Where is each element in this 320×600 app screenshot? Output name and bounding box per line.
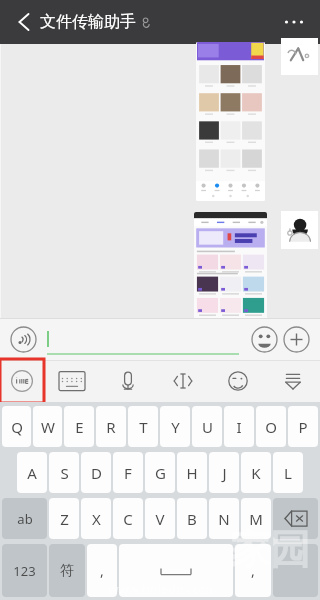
staticText: R — [106, 417, 116, 437]
button[interactable]: D — [81, 452, 111, 493]
staticText: 123 — [13, 562, 36, 580]
staticText: Q — [11, 417, 23, 437]
button[interactable]: Image — [194, 212, 267, 354]
button[interactable]: More functions — [283, 326, 310, 353]
button[interactable]: 符 — [49, 544, 85, 597]
staticText: B — [187, 509, 197, 529]
staticText: K — [251, 463, 261, 483]
staticText: H — [186, 463, 198, 483]
button[interactable]: T — [128, 406, 158, 447]
staticText: M — [249, 509, 263, 529]
button[interactable]: Back — [6, 5, 40, 39]
staticText: J — [222, 463, 227, 483]
button[interactable]: , — [235, 544, 271, 597]
button[interactable]: L — [273, 452, 303, 493]
staticText: P — [298, 417, 308, 437]
button[interactable]: Keyboard — [44, 360, 100, 402]
staticText: F — [124, 463, 132, 483]
button[interactable]: , — [87, 544, 117, 597]
button[interactable] — [47, 318, 243, 360]
button[interactable]: Emoji — [251, 326, 278, 353]
button[interactable]: M — [241, 498, 271, 539]
staticText: O — [265, 417, 277, 437]
button[interactable]: P — [288, 406, 318, 447]
staticText: C — [123, 509, 133, 529]
staticText: , — [100, 561, 104, 580]
staticText: Y — [171, 417, 180, 437]
staticText: U — [202, 417, 213, 437]
staticText: ab — [17, 510, 33, 528]
button[interactable]: U — [192, 406, 222, 447]
staticText: 符 — [60, 562, 74, 580]
staticText: D — [91, 463, 102, 483]
staticText: 文件传输助手 — [40, 12, 136, 32]
button[interactable]: W — [33, 406, 62, 447]
staticText: A — [27, 463, 37, 483]
button[interactable]: H — [177, 452, 207, 493]
staticText: N — [218, 509, 230, 529]
staticText: S — [60, 463, 69, 483]
staticText: I — [236, 417, 242, 437]
button[interactable]: Enter — [273, 544, 318, 597]
staticText: , — [251, 561, 255, 580]
button[interactable]: Voice input — [100, 360, 155, 402]
button[interactable]: Backspace — [273, 498, 318, 539]
button[interactable]: Hide keyboard — [265, 360, 320, 402]
button[interactable]: C — [113, 498, 143, 539]
button[interactable]: Voice message — [10, 326, 37, 353]
button[interactable]: B — [177, 498, 207, 539]
button[interactable]: More options — [276, 4, 312, 40]
button[interactable]: N — [209, 498, 239, 539]
button[interactable]: Sticker — [281, 211, 318, 249]
button[interactable]: Image — [196, 42, 265, 201]
button[interactable]: R — [96, 406, 126, 447]
button[interactable]: Move cursor — [155, 360, 210, 402]
button[interactable]: I — [224, 406, 254, 447]
staticText: X — [92, 509, 101, 529]
button[interactable]: O — [256, 406, 286, 447]
button[interactable]: K — [241, 452, 271, 493]
button[interactable]: V — [145, 498, 175, 539]
button[interactable]: Switch input method — [0, 360, 44, 402]
button[interactable]: Q — [2, 406, 31, 447]
button[interactable]: X — [81, 498, 111, 539]
button[interactable]: A — [17, 452, 47, 493]
staticText: E — [75, 417, 84, 437]
staticText: 家园 — [230, 524, 310, 574]
button[interactable]: S — [49, 452, 79, 493]
staticText: V — [155, 509, 165, 529]
staticText: www.boledir.com — [108, 580, 213, 598]
button[interactable]: Sticker — [281, 38, 318, 75]
button[interactable]: G — [145, 452, 175, 493]
staticText: Z — [60, 509, 69, 529]
button[interactable]: Z — [49, 498, 79, 539]
staticText: G — [155, 463, 166, 483]
button[interactable]: Emoticons — [210, 360, 265, 402]
staticText: W — [41, 417, 55, 437]
button[interactable]: Y — [160, 406, 190, 447]
button[interactable]: 123 — [2, 544, 47, 597]
button[interactable]: F — [113, 452, 143, 493]
button[interactable]: Space — [119, 544, 233, 597]
button[interactable]: ab — [2, 498, 47, 539]
staticText: L — [284, 463, 292, 483]
button[interactable]: E — [64, 406, 94, 447]
button[interactable]: J — [209, 452, 239, 493]
staticText: T — [139, 417, 148, 437]
